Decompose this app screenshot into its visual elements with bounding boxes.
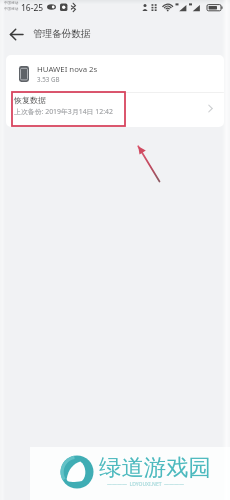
staticText: 恢复数据 xyxy=(14,95,46,105)
staticText: 3.53 GB xyxy=(37,75,60,83)
staticText: 16-25 xyxy=(21,2,44,14)
staticText: 管理备份数据 xyxy=(33,28,91,40)
staticText: 中国移动 xyxy=(4,1,19,6)
staticText: 中国移动 xyxy=(4,7,19,12)
button[interactable] xyxy=(6,55,224,92)
button[interactable]: Back xyxy=(4,22,29,47)
staticText: 绿道游戏园 xyxy=(99,453,211,481)
button[interactable] xyxy=(6,92,224,127)
staticText: ———— LDYOUXI.NET ———— xyxy=(107,481,185,488)
staticText: 上次备份: 2019年3月14日 12:42 xyxy=(14,107,113,116)
staticText: HUAWEI nova 2s xyxy=(37,64,98,75)
